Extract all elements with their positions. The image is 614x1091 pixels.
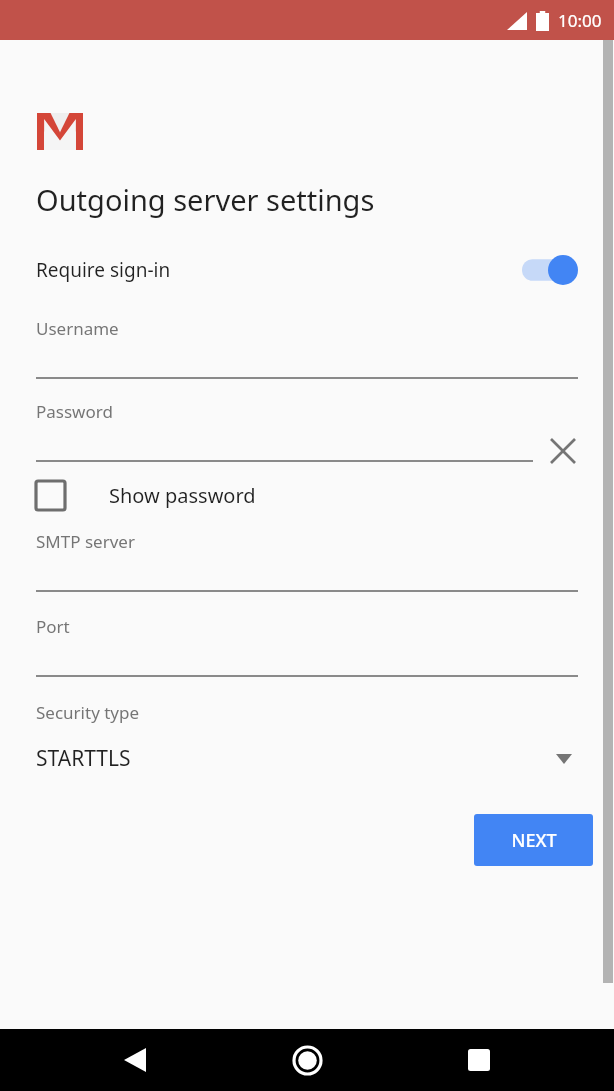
- staticText: Security type: [36, 701, 140, 724]
- button[interactable]: Home: [282, 1035, 332, 1085]
- button[interactable]: SMTP server: [0, 530, 614, 592]
- staticText: Show password: [109, 482, 256, 509]
- button[interactable]: Password: [0, 400, 614, 462]
- staticText: Username: [36, 317, 119, 340]
- staticText: Port: [36, 615, 70, 638]
- button[interactable]: Username: [0, 317, 614, 379]
- button[interactable]: NEXT: [474, 814, 593, 866]
- staticText: 10:00: [558, 9, 602, 32]
- staticText: Outgoing server settings: [36, 180, 375, 219]
- staticText: SMTP server: [36, 530, 135, 553]
- button[interactable]: Clear password: [541, 429, 585, 473]
- button[interactable]: Require sign-in: [0, 247, 614, 293]
- button[interactable]: Back: [110, 1035, 160, 1085]
- staticText: NEXT: [511, 828, 557, 853]
- button[interactable]: Show password: [0, 471, 614, 519]
- button[interactable]: Port: [0, 615, 614, 677]
- button[interactable]: Recent apps: [454, 1035, 504, 1085]
- staticText: Require sign-in: [36, 257, 171, 283]
- staticText: STARTTLS: [36, 744, 131, 773]
- staticText: Password: [36, 400, 113, 423]
- button[interactable]: Security type: [0, 701, 614, 773]
